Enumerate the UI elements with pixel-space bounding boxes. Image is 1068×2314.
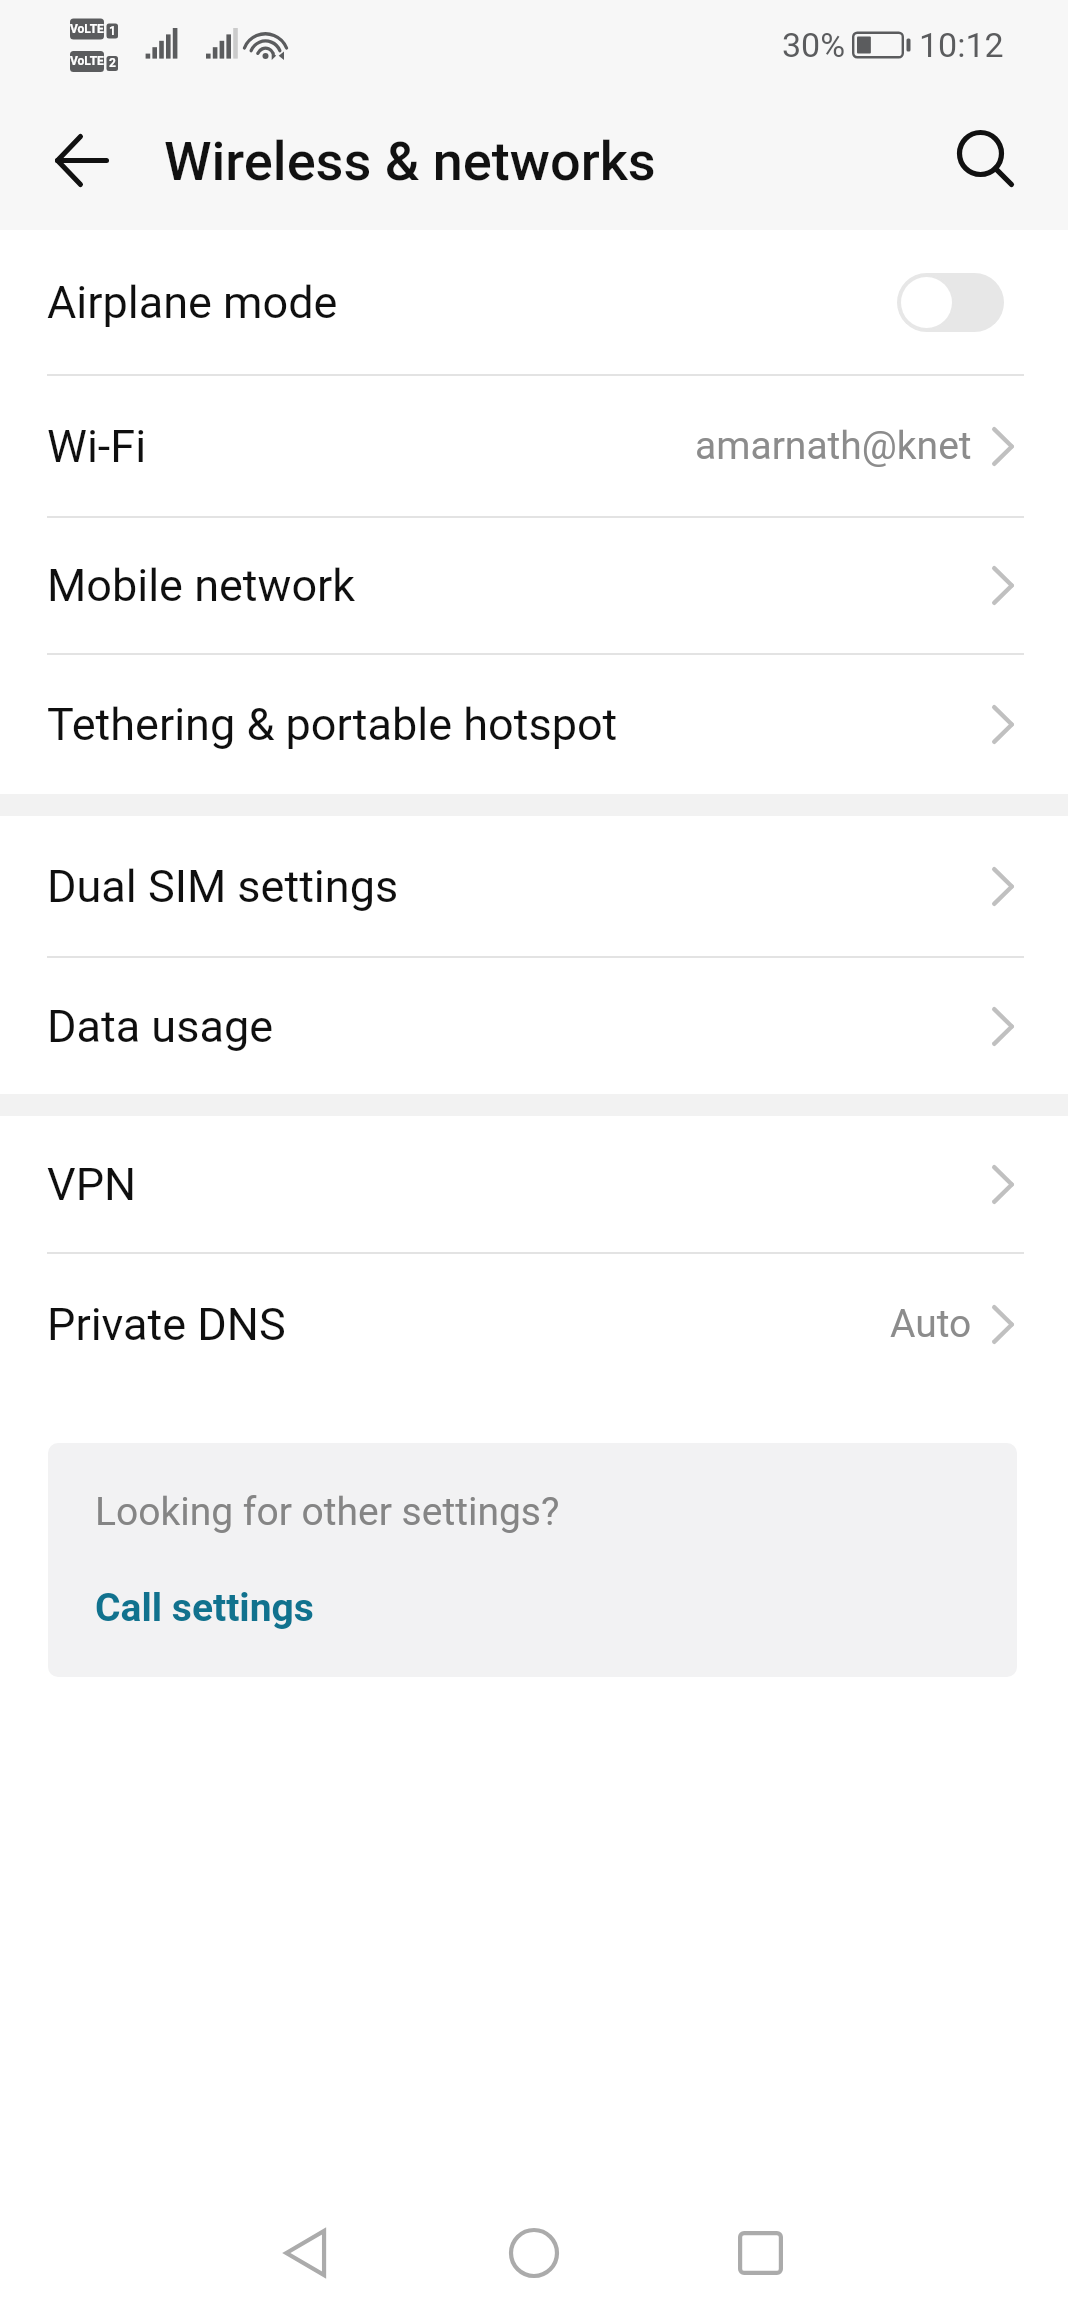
staticText: Airplane mode bbox=[47, 276, 338, 329]
staticText: Wireless & networks bbox=[164, 130, 656, 193]
button[interactable]: Looking for other settings? bbox=[48, 1443, 1017, 1677]
staticText: Wi-Fi bbox=[47, 420, 147, 473]
staticText: Data usage bbox=[47, 1000, 274, 1053]
staticText: VoLTE bbox=[70, 22, 104, 36]
staticText: VPN bbox=[47, 1158, 137, 1211]
staticText: Tethering & portable hotspot bbox=[47, 698, 618, 751]
button[interactable]: Search bbox=[931, 104, 1043, 216]
staticText: Private DNS bbox=[47, 1298, 286, 1351]
button[interactable]: Back bbox=[26, 104, 138, 216]
staticText: VoLTE bbox=[70, 54, 104, 68]
staticText: 10:12 bbox=[919, 25, 1004, 65]
button[interactable]: Back bbox=[255, 2203, 355, 2303]
staticText: Mobile network bbox=[47, 559, 356, 612]
button[interactable]: Private DNS bbox=[0, 1254, 1068, 1394]
staticText: Call settings bbox=[95, 1585, 314, 1631]
staticText: 30% bbox=[782, 25, 846, 65]
button[interactable]: Wi-Fi bbox=[0, 376, 1068, 516]
staticText: Looking for other settings? bbox=[95, 1489, 560, 1535]
button[interactable]: Tethering & portable hotspot bbox=[0, 655, 1068, 794]
button[interactable]: Recents bbox=[710, 2203, 810, 2303]
staticText: amarnath@knet bbox=[695, 423, 972, 469]
staticText: Auto bbox=[890, 1301, 972, 1347]
staticText: Dual SIM settings bbox=[47, 860, 399, 913]
button[interactable]: Dual SIM settings bbox=[0, 816, 1068, 956]
button[interactable]: VPN bbox=[0, 1116, 1068, 1252]
button[interactable]: Data usage bbox=[0, 958, 1068, 1094]
button[interactable]: Airplane mode bbox=[0, 230, 1068, 374]
button[interactable]: Mobile network bbox=[0, 518, 1068, 653]
button[interactable]: Home bbox=[484, 2203, 584, 2303]
staticText: 2 bbox=[109, 56, 116, 70]
staticText: 1 bbox=[109, 24, 116, 38]
